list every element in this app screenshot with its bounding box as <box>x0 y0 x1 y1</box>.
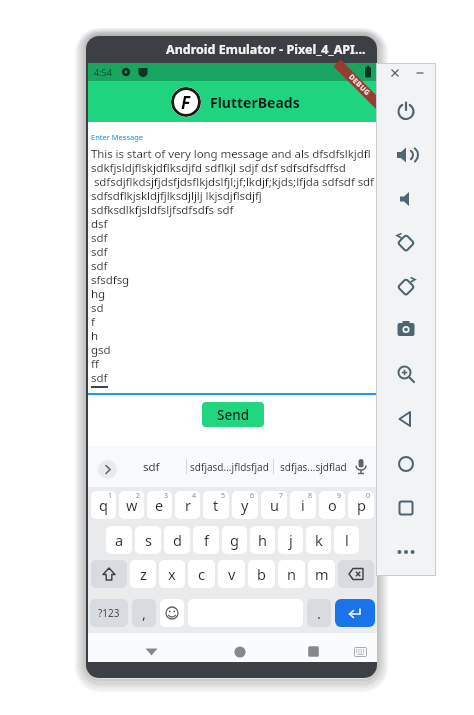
staticText: b <box>257 564 266 584</box>
button[interactable]: h <box>250 526 275 554</box>
button[interactable]: n <box>278 560 305 588</box>
staticText: 1 <box>108 491 113 501</box>
button[interactable]: sdf <box>126 446 177 487</box>
staticText: 2 <box>136 491 141 501</box>
button[interactable]: c <box>188 560 215 588</box>
staticText: m <box>315 564 329 584</box>
staticText: . <box>317 603 321 623</box>
staticText: 3 <box>164 491 169 501</box>
staticText: k <box>315 530 323 550</box>
staticText: DEBUG <box>346 72 372 98</box>
button[interactable] <box>394 187 418 211</box>
button[interactable] <box>160 599 184 627</box>
button[interactable] <box>394 275 418 299</box>
staticText: g <box>230 530 239 550</box>
button[interactable] <box>394 231 418 255</box>
staticText: c <box>198 564 205 584</box>
button[interactable]: o <box>319 491 345 519</box>
button[interactable] <box>394 407 418 431</box>
staticText: 9 <box>337 491 342 501</box>
staticText: p <box>357 495 366 515</box>
staticText: 7 <box>279 491 284 501</box>
button[interactable] <box>394 540 418 564</box>
button[interactable] <box>346 637 374 666</box>
button[interactable]: sdfjasd...jfldsfjad <box>189 446 270 487</box>
button[interactable]: d <box>164 526 190 554</box>
staticText: q <box>99 495 108 515</box>
staticText: 4 <box>192 491 197 501</box>
staticText: 5 <box>221 491 226 501</box>
button[interactable] <box>389 67 401 79</box>
button[interactable] <box>394 496 418 520</box>
staticText: e <box>155 495 164 515</box>
staticText: d <box>173 530 182 550</box>
button[interactable]: y <box>232 491 258 519</box>
button[interactable]: p <box>348 491 374 519</box>
button[interactable]: q <box>91 491 116 519</box>
staticText: v <box>228 564 236 584</box>
button[interactable]: l <box>334 526 359 554</box>
button[interactable]: x <box>159 560 185 588</box>
button[interactable] <box>338 560 374 588</box>
button[interactable]: w <box>119 491 144 519</box>
button[interactable]: t <box>203 491 229 519</box>
button[interactable] <box>225 637 255 666</box>
staticText: ?123 <box>98 606 120 620</box>
staticText: This is start of very long message and a… <box>91 146 375 385</box>
staticText: w <box>126 495 138 515</box>
staticText: z <box>140 564 147 584</box>
button[interactable] <box>98 460 117 479</box>
button[interactable] <box>91 560 127 588</box>
button[interactable]: m <box>308 560 335 588</box>
button[interactable] <box>394 317 418 341</box>
button[interactable] <box>335 599 375 627</box>
staticText: a <box>115 530 124 550</box>
button[interactable]: a <box>106 526 132 554</box>
button[interactable]: s <box>135 526 161 554</box>
button[interactable] <box>136 637 166 666</box>
button[interactable]: . <box>307 599 331 627</box>
staticText: 8 <box>308 491 313 501</box>
button[interactable]: u <box>261 491 287 519</box>
staticText: x <box>168 564 176 584</box>
staticText: 4:54 <box>94 66 112 78</box>
staticText: l <box>345 530 349 550</box>
button[interactable] <box>394 143 418 167</box>
button[interactable]: , <box>132 599 156 627</box>
staticText: f <box>204 530 209 550</box>
button[interactable] <box>394 99 418 123</box>
button[interactable]: Send <box>202 402 264 427</box>
button[interactable]: g <box>222 526 247 554</box>
button[interactable]: b <box>248 560 275 588</box>
staticText: o <box>328 495 337 515</box>
button[interactable]: f <box>193 526 219 554</box>
staticText: Send <box>217 406 250 424</box>
staticText: Android Emulator - Pixel_4_API... <box>166 41 366 58</box>
button[interactable] <box>298 637 328 666</box>
staticText: FlutterBeads <box>210 93 300 112</box>
button[interactable]: k <box>306 526 331 554</box>
staticText: sdfjas...sjdflad <box>280 460 347 474</box>
button[interactable]: r <box>175 491 200 519</box>
staticText: Enter Message <box>91 132 144 142</box>
button[interactable] <box>414 67 426 79</box>
button[interactable]: i <box>290 491 316 519</box>
button[interactable]: e <box>147 491 172 519</box>
staticText: F <box>181 91 191 114</box>
button[interactable]: z <box>130 560 156 588</box>
button[interactable]: ?123 <box>90 599 128 627</box>
staticText: i <box>301 495 305 515</box>
button[interactable]: sdfjas...sjdflad <box>276 446 350 487</box>
staticText: sdf <box>143 459 160 475</box>
button[interactable]: v <box>218 560 245 588</box>
staticText: n <box>287 564 296 584</box>
staticText: sdfjasd...jfldsfjad <box>190 460 269 474</box>
staticText: r <box>185 495 191 515</box>
staticText: , <box>142 603 146 623</box>
button[interactable] <box>394 362 418 386</box>
button[interactable] <box>394 452 418 476</box>
button[interactable] <box>354 459 368 475</box>
staticText: s <box>145 530 152 550</box>
button[interactable]: j <box>278 526 303 554</box>
